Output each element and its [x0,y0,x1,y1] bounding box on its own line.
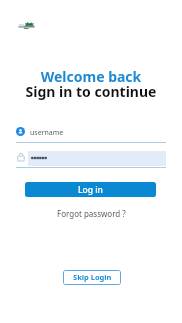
staticText: Log in [78,184,103,196]
button[interactable]: username [16,124,166,143]
other: Logo [17,21,37,30]
button[interactable]: Skip Login [63,270,121,285]
button[interactable]: Forgot password ? [51,205,132,222]
staticText: Welcome back [0,67,182,86]
staticText: username [30,128,64,138]
button[interactable]: Log in [25,182,156,197]
button[interactable] [16,150,166,168]
staticText: Skip Login [73,272,112,282]
staticText: Sign in to continue [0,82,182,101]
staticText: Forgot password ? [57,208,126,219]
